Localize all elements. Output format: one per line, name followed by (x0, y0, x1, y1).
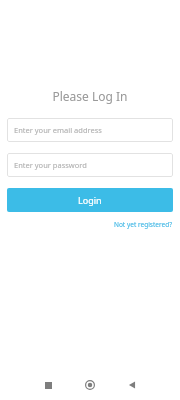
staticText: Not yet registered? (114, 220, 172, 229)
button[interactable]: Home (76, 371, 104, 399)
button[interactable]: Enter your email address (7, 118, 173, 142)
button[interactable]: Not yet registered? (113, 219, 173, 230)
staticText: Login (78, 194, 102, 206)
button[interactable]: Recent apps (34, 371, 62, 399)
button[interactable]: Login (7, 188, 173, 212)
staticText: Enter your password (14, 160, 87, 170)
staticText: Enter your email address (14, 125, 102, 135)
button[interactable]: Back (118, 371, 146, 399)
button[interactable]: Enter your password (7, 153, 173, 177)
staticText: Please Log In (7, 88, 173, 104)
